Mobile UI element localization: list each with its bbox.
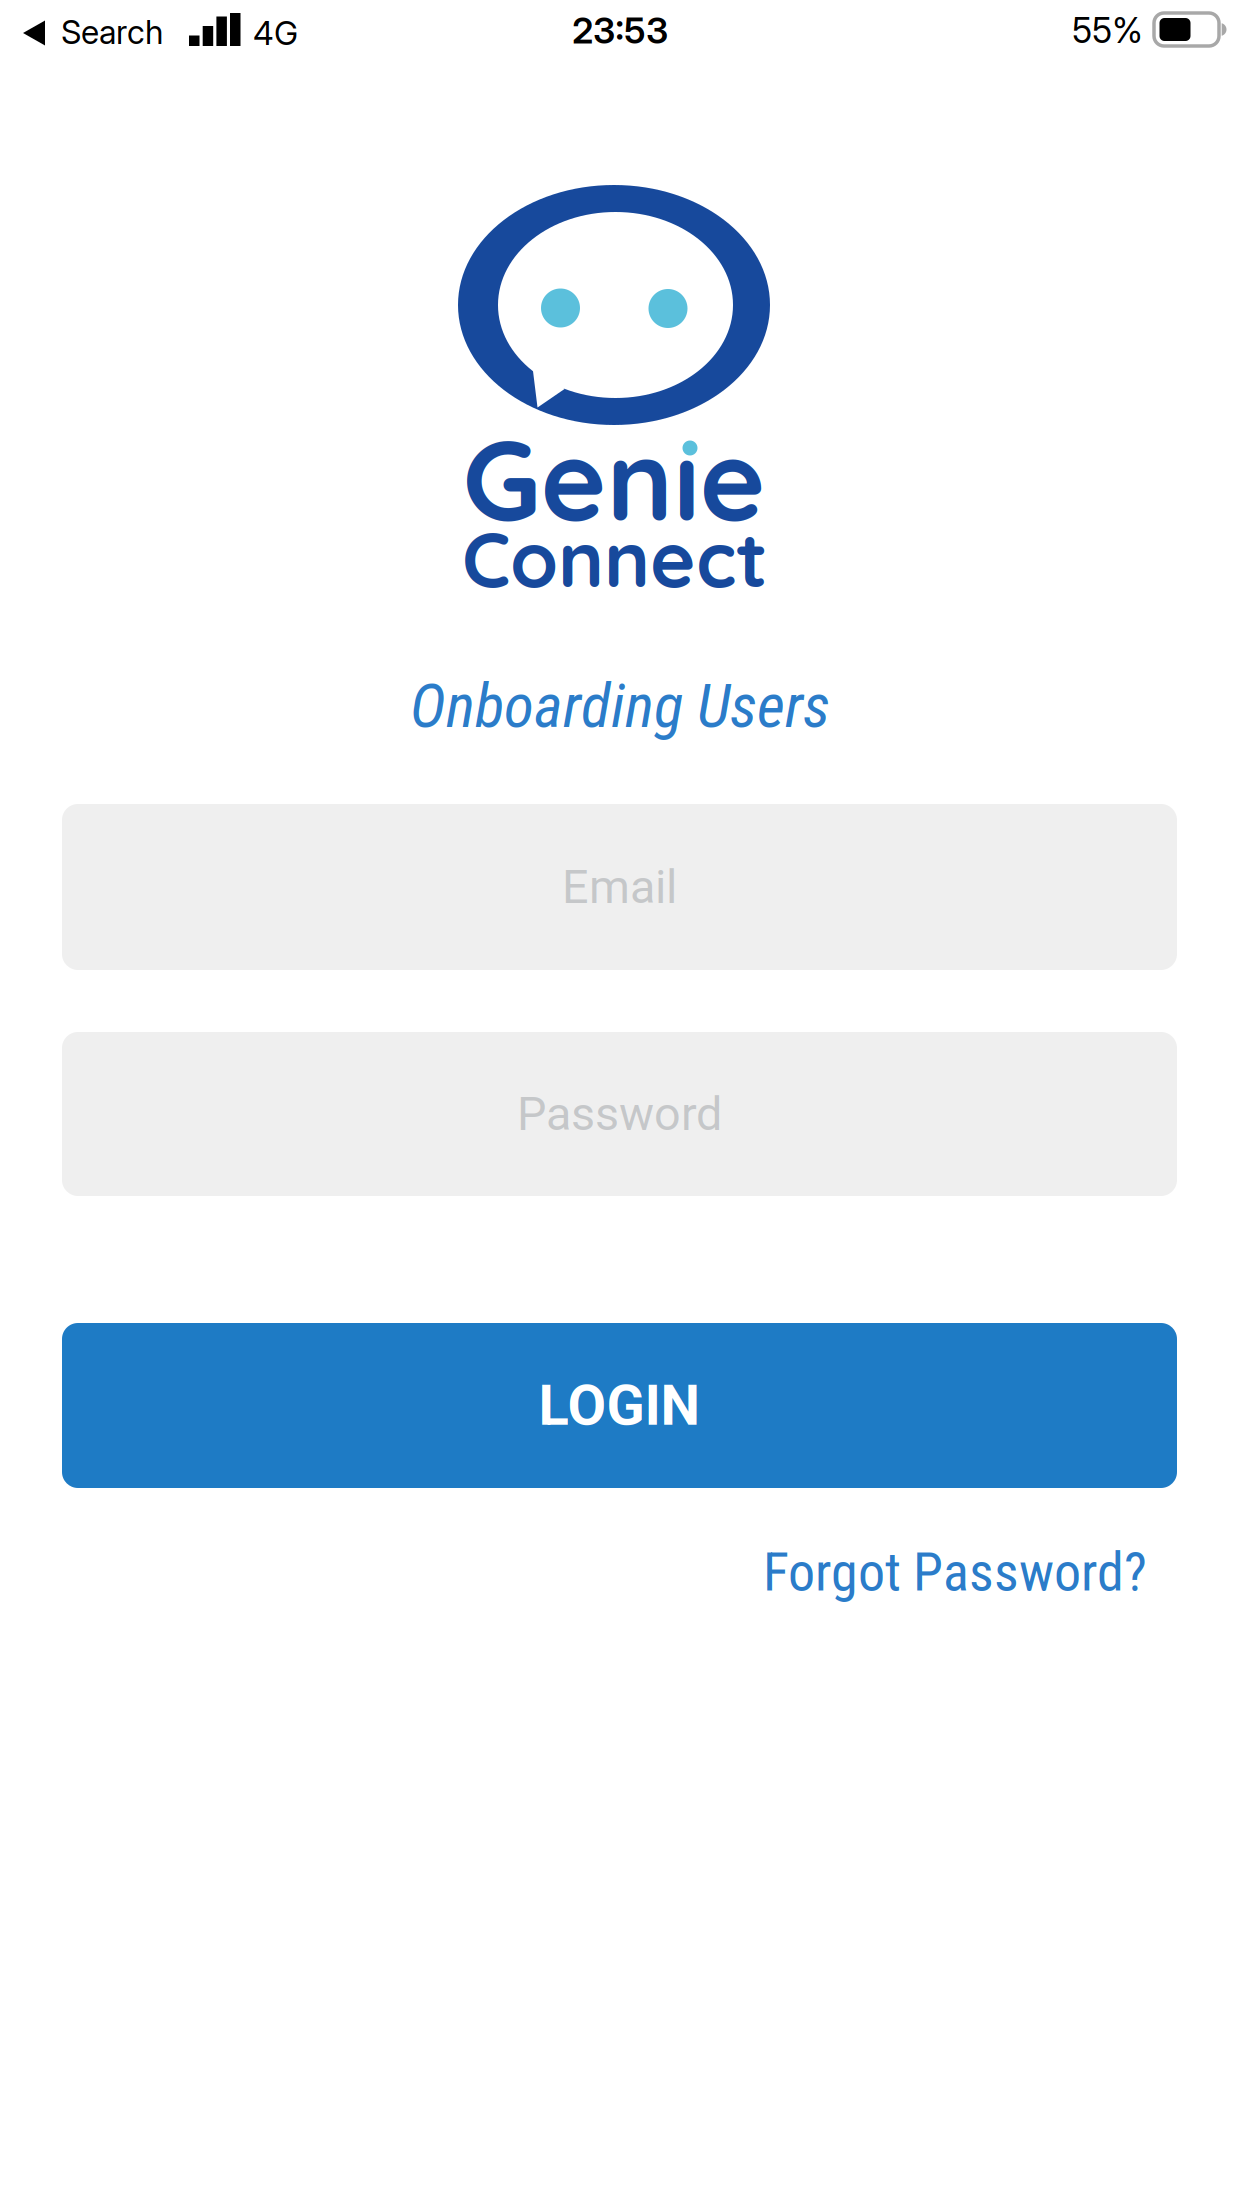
staticText: Forgot Password? xyxy=(763,1540,1147,1604)
staticText: Search xyxy=(61,12,163,52)
staticText: Onboarding Users xyxy=(410,670,830,742)
button[interactable]: Forgot Password? xyxy=(763,1540,1147,1604)
button[interactable]: Back to Search xyxy=(0,0,190,60)
staticText: Password xyxy=(517,1087,722,1141)
staticText: Connect xyxy=(462,510,768,606)
button[interactable]: Password xyxy=(62,1032,1177,1196)
button[interactable]: LOGIN xyxy=(62,1323,1177,1488)
staticText: 4G xyxy=(253,13,298,53)
staticText: 23:53 xyxy=(572,9,668,52)
button[interactable]: Email xyxy=(62,804,1177,970)
staticText: Email xyxy=(562,860,677,914)
staticText: LOGIN xyxy=(538,1373,700,1438)
staticText: Genıe xyxy=(462,408,765,548)
staticText: 55% xyxy=(1072,9,1143,51)
